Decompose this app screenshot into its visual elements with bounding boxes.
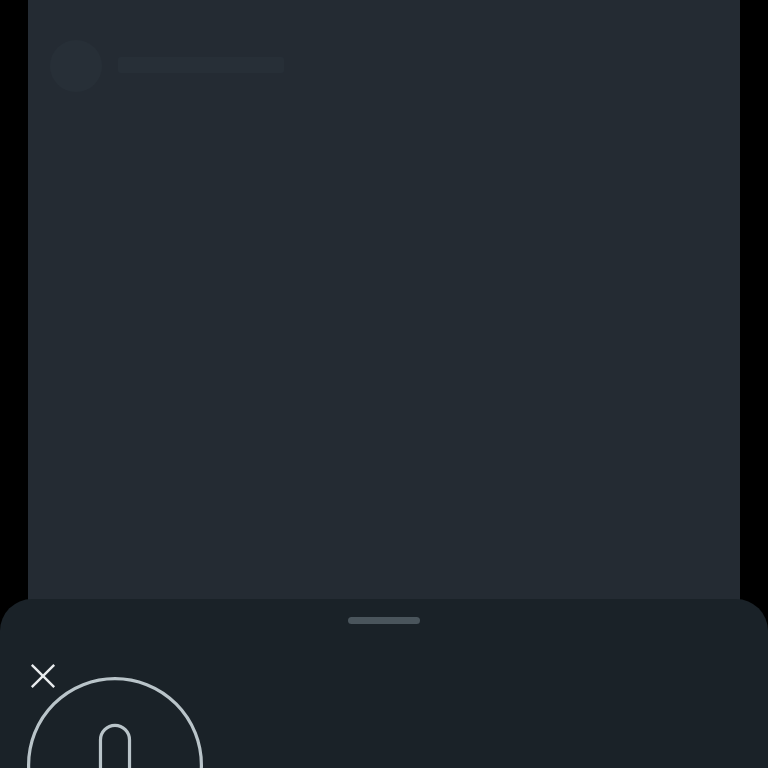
button[interactable]: Microphone bbox=[27, 677, 203, 768]
button[interactable]: Close bbox=[20, 653, 66, 699]
